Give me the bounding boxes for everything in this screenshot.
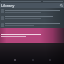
button[interactable]: Library — [0, 3, 64, 8]
button[interactable]: Browse — [30, 57, 35, 62]
staticText: Library — [1, 3, 60, 8]
button[interactable] — [0, 8, 64, 14]
button[interactable] — [0, 14, 64, 21]
button[interactable]: Search — [60, 4, 63, 7]
button[interactable]: Profile — [47, 57, 52, 62]
button[interactable] — [0, 28, 64, 43]
button[interactable] — [0, 21, 64, 28]
button[interactable]: Home — [12, 57, 17, 62]
